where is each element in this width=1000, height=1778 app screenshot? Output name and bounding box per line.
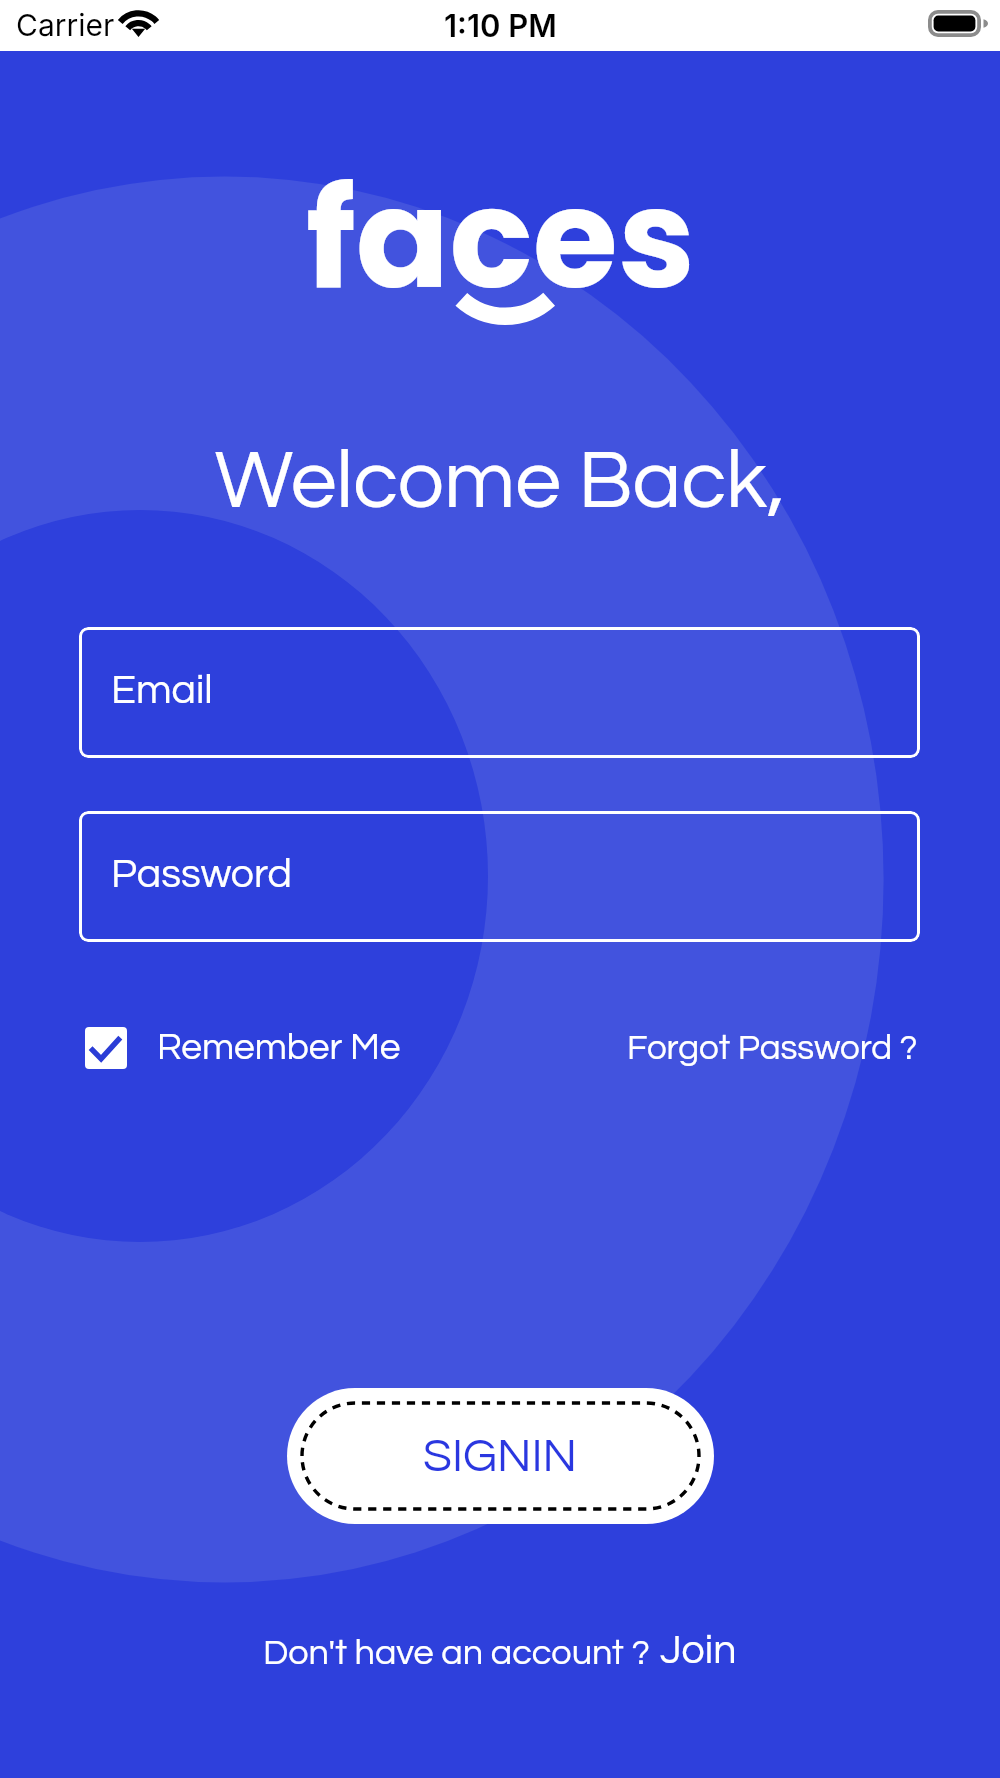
button[interactable]: Password — [79, 811, 920, 942]
button[interactable]: Join — [660, 1629, 737, 1671]
staticText: Don't have an account ? — [263, 1634, 650, 1671]
button[interactable]: Forgot Password ? — [627, 1030, 918, 1066]
staticText: Remember Me — [157, 1029, 401, 1067]
staticText: Join — [660, 1629, 737, 1671]
button[interactable]: SIGNIN — [287, 1388, 714, 1524]
staticText: 1:10 PM — [444, 7, 557, 45]
button[interactable]: Email — [79, 627, 920, 758]
staticText: Carrier — [16, 7, 115, 43]
staticText: SIGNIN — [423, 1432, 578, 1480]
staticText: faces — [306, 142, 695, 292]
staticText: Forgot Password ? — [627, 1030, 918, 1066]
staticText: Welcome Back, — [0, 440, 1000, 524]
staticText: Email — [111, 669, 213, 711]
button[interactable]: Remember Me — [85, 1027, 401, 1069]
staticText: Password — [111, 853, 292, 895]
